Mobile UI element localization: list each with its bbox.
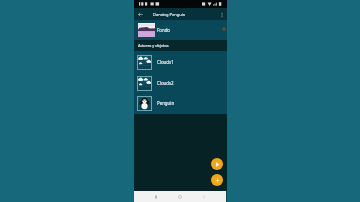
staticText: Dancing Penguin [153,12,186,17]
button[interactable]: Play [211,158,223,170]
button[interactable]: Recents [150,191,161,202]
staticText: Penguin [157,100,175,106]
button[interactable]: More options [216,9,227,20]
staticText: Fondo [157,27,171,33]
button[interactable]: Clouds1 [134,52,227,72]
staticText: Clouds1 [157,59,174,65]
button[interactable]: Add [211,174,223,186]
button[interactable]: Home [174,191,185,202]
staticText: Clouds2 [157,80,174,86]
button[interactable]: Back [198,191,209,202]
button[interactable]: Fondo [134,20,227,40]
staticText: Actores y objetos [138,43,169,48]
button[interactable]: Back [135,9,146,20]
button[interactable]: Penguin [134,93,227,113]
button[interactable]: Clouds2 [134,73,227,93]
